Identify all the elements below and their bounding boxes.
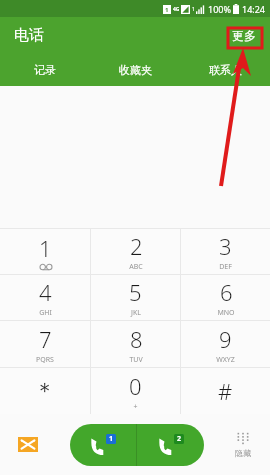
staticText: PQRS [36, 355, 54, 365]
staticText: + [133, 402, 138, 412]
button[interactable]: 5 [91, 275, 180, 320]
staticText: DEF [219, 262, 232, 272]
button[interactable]: Message [14, 433, 42, 456]
button[interactable]: 9 [181, 321, 270, 367]
staticText: 1 [192, 6, 195, 13]
staticText: 6 [220, 277, 233, 307]
staticText: # [218, 376, 233, 406]
staticText: 2 [130, 231, 143, 261]
button[interactable]: 8 [91, 321, 180, 367]
staticText: 4G [173, 6, 180, 13]
staticText: 0 [129, 371, 142, 401]
staticText: 记录 [34, 63, 56, 77]
staticText: JKL [131, 308, 141, 318]
staticText: 1 [39, 233, 52, 263]
staticText: 9 [219, 324, 232, 354]
button[interactable]: # [181, 368, 270, 414]
button[interactable]: 3 [181, 229, 270, 274]
staticText: 5 [129, 277, 142, 307]
staticText: 1 [109, 434, 114, 444]
button[interactable]: 1 [0, 229, 90, 274]
button[interactable]: 收藏夹 [90, 54, 180, 86]
staticText: 2 [177, 434, 182, 444]
button[interactable]: ＊ [0, 368, 90, 414]
staticText: 收藏夹 [119, 63, 152, 77]
staticText: ABC [129, 262, 143, 272]
button[interactable]: 记录 [0, 54, 90, 86]
button[interactable]: 联系人 [180, 54, 270, 86]
staticText: 3 [219, 231, 232, 261]
staticText: 电话 [14, 26, 44, 45]
button[interactable]: 6 [181, 275, 270, 320]
button[interactable]: 2 [91, 229, 180, 274]
staticText: TUV [129, 355, 143, 365]
staticText: 7 [39, 324, 52, 354]
button[interactable]: 4 [0, 275, 90, 320]
staticText: 1 [165, 6, 169, 14]
staticText: MNO [217, 308, 235, 318]
button[interactable]: 0 [91, 368, 180, 414]
staticText: 8 [130, 324, 143, 354]
staticText: 隐藏 [235, 448, 251, 458]
staticText: 100% [208, 3, 231, 15]
button[interactable]: Call with SIM 1 [70, 424, 136, 466]
button[interactable]: 7 [0, 321, 90, 367]
staticText: 14:24 [242, 3, 266, 15]
staticText: 联系人 [209, 63, 242, 77]
staticText: WXYZ [216, 355, 235, 365]
staticText: ＊ [34, 377, 56, 405]
button[interactable]: 更多 [228, 25, 260, 46]
staticText: 4 [39, 277, 52, 307]
staticText: GHI [39, 308, 52, 318]
button[interactable]: Call with SIM 2 [137, 424, 204, 466]
staticText: 更多 [232, 28, 256, 43]
button[interactable]: Hide keypad [232, 429, 254, 461]
